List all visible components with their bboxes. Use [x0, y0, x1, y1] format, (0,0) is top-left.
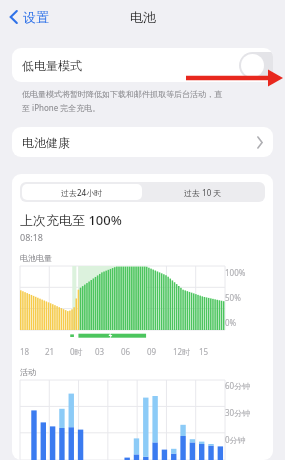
- staticText: 电池健康: [22, 135, 70, 150]
- button[interactable]: 过去 10 天: [142, 184, 263, 200]
- button[interactable]: 过去24小时: [22, 184, 142, 200]
- staticText: 09: [147, 346, 157, 357]
- staticText: 0时: [70, 346, 83, 357]
- staticText: 08:18: [20, 231, 44, 243]
- staticText: 至 iPhone 完全充电。: [22, 102, 101, 113]
- staticText: 100%: [225, 267, 246, 278]
- staticText: 0分钟: [225, 434, 246, 445]
- staticText: 06: [121, 346, 131, 357]
- staticText: 低电量模式: [22, 58, 82, 73]
- staticText: 低电量模式将暂时降低如下载和邮件抓取等后台活动，直: [22, 89, 222, 99]
- staticText: 0%: [225, 317, 237, 328]
- button[interactable]: 电池健康: [12, 127, 273, 157]
- staticText: 15: [199, 346, 209, 357]
- button[interactable]: 低电量模式开关: [239, 52, 273, 79]
- staticText: 12时: [173, 346, 191, 357]
- staticText: 设置: [23, 9, 49, 25]
- button[interactable]: 低电量模式: [12, 48, 273, 82]
- staticText: 18: [20, 346, 30, 357]
- staticText: 过去24小时: [61, 187, 103, 198]
- staticText: 21: [45, 346, 55, 357]
- staticText: 过去 10 天: [184, 187, 222, 198]
- staticText: 电池: [130, 9, 156, 25]
- button[interactable]: 设置: [6, 5, 52, 29]
- staticText: 上次充电至 100%: [20, 211, 122, 229]
- staticText: 50%: [225, 292, 241, 303]
- staticText: 活动: [20, 367, 36, 377]
- staticText: 03: [95, 346, 105, 357]
- staticText: 30分钟: [225, 407, 251, 418]
- staticText: 电池电量: [20, 253, 52, 263]
- staticText: 60分钟: [225, 380, 251, 391]
